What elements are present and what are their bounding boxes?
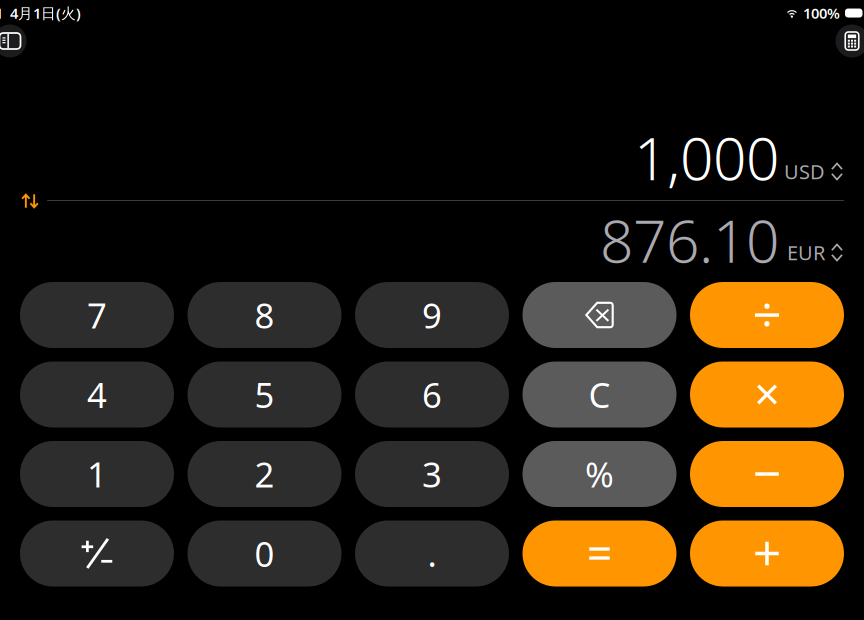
button[interactable]: 1 xyxy=(20,441,174,507)
staticText: 8 xyxy=(254,292,274,338)
button[interactable]: Multiply xyxy=(690,361,844,427)
button[interactable]: Equals xyxy=(522,520,676,586)
staticText: C xyxy=(588,371,610,417)
staticText: EUR xyxy=(787,239,825,266)
button[interactable]: Add xyxy=(690,520,844,586)
staticText: 7 xyxy=(87,292,107,338)
button[interactable]: 9 xyxy=(355,282,509,348)
staticText: 4月1日(火) xyxy=(10,3,81,23)
button[interactable]: 1,000 US dollars xyxy=(479,129,779,185)
staticText: USD xyxy=(784,158,825,185)
staticText: 0 xyxy=(254,530,274,576)
button[interactable]: Change source currency, USD xyxy=(773,158,843,184)
staticText: 1 xyxy=(87,451,107,497)
button[interactable]: 0 xyxy=(187,520,341,586)
button[interactable]: 3 xyxy=(355,441,509,507)
button[interactable]: 8 xyxy=(187,282,341,348)
staticText: 2 xyxy=(254,451,274,497)
button[interactable]: % xyxy=(522,441,676,507)
button[interactable]: 4 xyxy=(20,361,174,427)
button[interactable]: Show Sidebar xyxy=(0,24,26,57)
button[interactable]: Plus Minus xyxy=(20,520,174,586)
staticText: 9 xyxy=(422,292,442,338)
staticText: 1,000 xyxy=(634,118,779,196)
staticText: 9:41 xyxy=(0,3,3,23)
button[interactable]: Delete xyxy=(522,282,676,348)
button[interactable]: Swap currencies xyxy=(15,188,45,214)
button[interactable]: Divide xyxy=(690,282,844,348)
button[interactable]: Change target currency, EUR xyxy=(773,239,843,265)
staticText: 4 xyxy=(87,371,107,417)
button[interactable]: 5 xyxy=(187,361,341,427)
button[interactable]: C xyxy=(522,361,676,427)
staticText: 3 xyxy=(422,451,442,497)
button[interactable]: Subtract xyxy=(690,441,844,507)
button[interactable]: 6 xyxy=(355,361,509,427)
button[interactable]: 2 xyxy=(187,441,341,507)
button[interactable]: 876.10 euros xyxy=(479,212,779,268)
button[interactable]: Calculator xyxy=(835,24,864,57)
staticText: 6 xyxy=(422,371,442,417)
staticText: % xyxy=(585,451,614,497)
staticText: 876.10 xyxy=(600,201,779,279)
staticText: . xyxy=(427,530,436,576)
button[interactable]: 7 xyxy=(20,282,174,348)
staticText: 5 xyxy=(254,371,274,417)
button[interactable]: . xyxy=(355,520,509,586)
staticText: 100% xyxy=(803,3,840,23)
